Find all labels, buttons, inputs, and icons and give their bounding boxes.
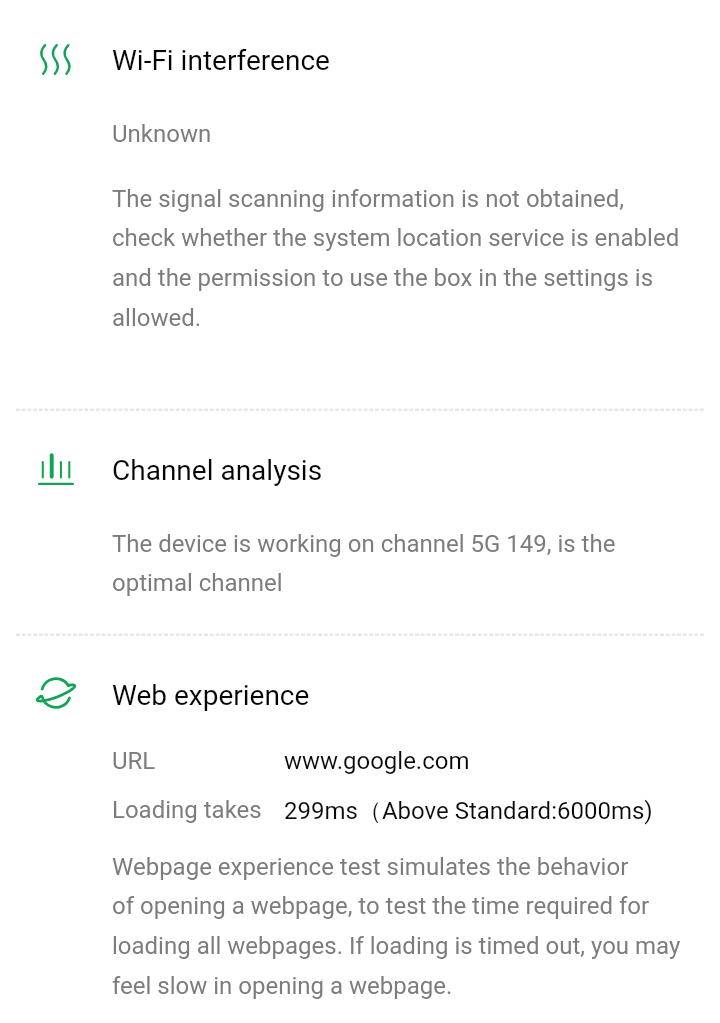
staticText: Channel analysis bbox=[112, 454, 323, 487]
staticText: 299ms（Above Standard:6000ms) bbox=[284, 796, 653, 826]
staticText: www.google.com bbox=[284, 747, 470, 775]
staticText: Webpage experience test simulates the be… bbox=[112, 853, 712, 1000]
staticText: The device is working on channel 5G 149,… bbox=[112, 530, 632, 597]
button[interactable]: Wi-Fi interference bbox=[0, 38, 720, 82]
button[interactable]: URL bbox=[112, 747, 470, 775]
button[interactable]: Loading takes bbox=[112, 796, 653, 826]
other: Channel analysis bbox=[38, 452, 74, 488]
staticText: The signal scanning information is not o… bbox=[112, 185, 690, 332]
button[interactable]: Channel analysis bbox=[0, 448, 720, 492]
button[interactable]: Web experience bbox=[0, 673, 720, 717]
staticText: Web experience bbox=[112, 679, 310, 712]
other: Web experience bbox=[34, 673, 78, 717]
staticText: Loading takes bbox=[112, 796, 284, 824]
staticText: URL bbox=[112, 747, 284, 775]
staticText: Wi-Fi interference bbox=[112, 44, 330, 77]
staticText: Unknown bbox=[112, 120, 212, 148]
other: Wi-Fi interference bbox=[41, 45, 72, 76]
